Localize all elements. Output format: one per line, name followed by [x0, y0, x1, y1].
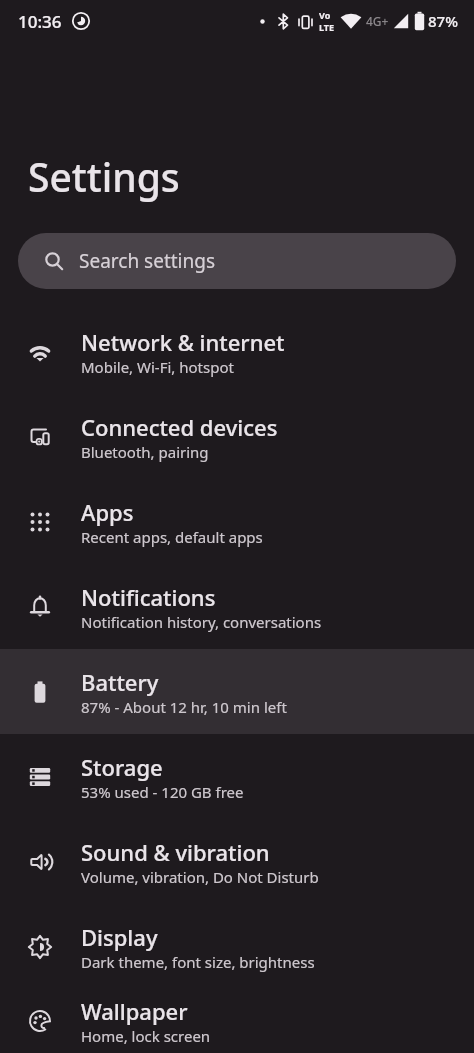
- button[interactable]: Storage: [0, 734, 474, 819]
- staticText: Apps: [81, 497, 134, 527]
- staticText: 4G+: [366, 13, 389, 29]
- staticText: Recent apps, default apps: [81, 527, 263, 547]
- staticText: Mobile, Wi-Fi, hotspot: [81, 357, 234, 377]
- button[interactable]: Notifications: [0, 564, 474, 649]
- staticText: Display: [81, 922, 158, 952]
- button[interactable]: Battery: [0, 649, 474, 734]
- staticText: 87% - About 12 hr, 10 min left: [81, 697, 287, 717]
- button[interactable]: Sound & vibration: [0, 819, 474, 904]
- staticText: Dark theme, font size, brightness: [81, 952, 315, 972]
- button[interactable]: Connected devices: [0, 394, 474, 479]
- button[interactable]: Network & internet: [0, 309, 474, 394]
- staticText: 87%: [428, 11, 458, 31]
- staticText: Battery: [81, 667, 159, 697]
- staticText: Settings: [28, 150, 180, 203]
- staticText: 53% used - 120 GB free: [81, 782, 244, 802]
- staticText: Volume, vibration, Do Not Disturb: [81, 867, 319, 887]
- button[interactable]: Display: [0, 904, 474, 989]
- staticText: Notifications: [81, 582, 216, 612]
- staticText: Search settings: [79, 248, 216, 274]
- staticText: Vo: [319, 9, 331, 21]
- staticText: Bluetooth, pairing: [81, 442, 209, 462]
- button[interactable]: Wallpaper: [0, 989, 474, 1053]
- staticText: Network & internet: [81, 327, 285, 357]
- staticText: Notification history, conversations: [81, 612, 322, 632]
- staticText: LTE: [319, 21, 335, 33]
- staticText: Connected devices: [81, 412, 278, 442]
- button[interactable]: Apps: [0, 479, 474, 564]
- staticText: Wallpaper: [81, 996, 188, 1026]
- staticText: Sound & vibration: [81, 837, 270, 867]
- staticText: 10:36: [18, 10, 62, 33]
- staticText: Storage: [81, 752, 163, 782]
- button[interactable]: Search settings: [18, 233, 456, 289]
- staticText: Home, lock screen: [81, 1026, 211, 1046]
